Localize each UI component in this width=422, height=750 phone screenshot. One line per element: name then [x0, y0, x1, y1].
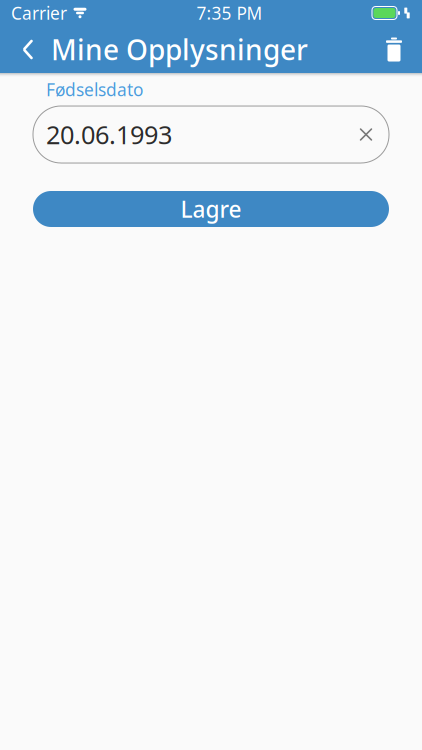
staticText: 7:35 PM — [196, 1, 262, 24]
staticText: Carrier — [11, 1, 67, 24]
staticText: Fødselsdato — [46, 78, 143, 101]
button[interactable]: Lagre — [33, 191, 389, 227]
button[interactable]: Back — [5, 26, 51, 73]
staticText: 20.06.1993 — [46, 118, 172, 151]
button[interactable]: Delete — [371, 26, 417, 73]
staticText: Lagre — [180, 194, 241, 224]
staticText: Mine Opplysninger — [51, 31, 308, 68]
button[interactable]: 20.06.1993 — [33, 106, 389, 163]
